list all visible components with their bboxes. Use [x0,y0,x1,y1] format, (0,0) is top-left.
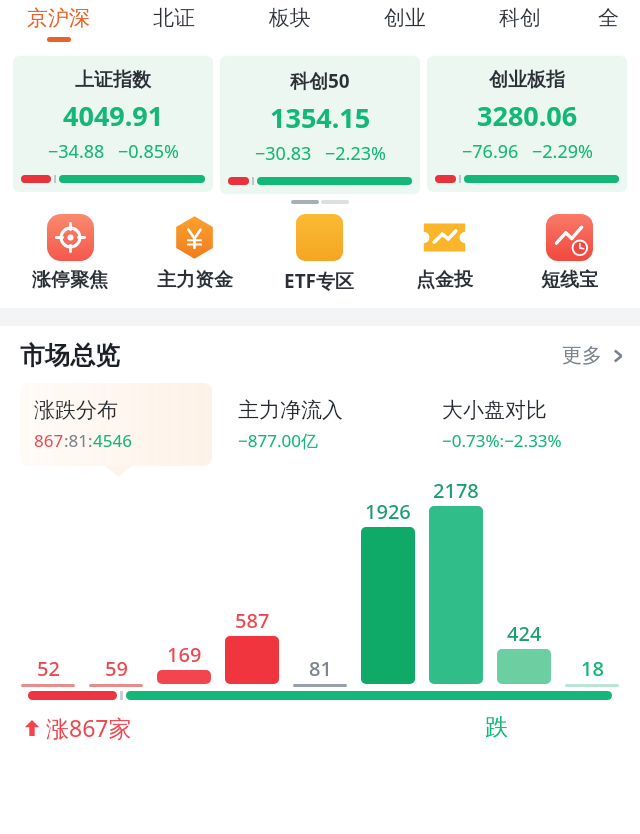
button[interactable]: 主力资金 [132,214,257,292]
staticText: 科创 [499,5,541,31]
button[interactable]: 短线宝 [507,214,632,292]
button[interactable]: 科创50 [220,56,420,194]
staticText: −2.23% [325,141,386,166]
button[interactable]: 板块 [232,0,347,56]
staticText: 4049.91 [63,97,164,134]
staticText: 全 [598,5,619,31]
staticText: 587 [235,607,270,634]
staticText: 52 [37,655,60,682]
staticText: 169 [167,641,202,668]
staticText: 创业板指 [489,68,565,92]
staticText: −30.83 [255,141,312,166]
staticText: 1354.15 [270,99,371,136]
button[interactable]: 点金投 [382,214,507,292]
button[interactable]: 更多 [562,343,626,368]
staticText: 59 [105,655,128,682]
staticText: −76.96 [462,139,519,164]
staticText: 涨867家 [46,712,132,743]
button[interactable]: 北证 [116,0,232,56]
button[interactable]: 全 [577,0,640,56]
staticText: 1926 [365,498,411,525]
button[interactable]: 主力净流入 [224,383,416,466]
staticText: ETF专区 [284,268,355,294]
staticText: 京沪深 [27,5,90,31]
staticText: −34.88 [48,139,105,164]
staticText: 点金投 [416,268,473,292]
staticText: 涨停聚焦 [32,268,108,292]
staticText: :81: [64,429,93,452]
staticText: 81 [309,655,332,682]
staticText: 北证 [153,5,195,31]
button[interactable]: 大小盘对比 [428,383,620,466]
staticText: 市场总览 [20,340,120,371]
staticText: −0.85% [118,139,179,164]
button[interactable]: 涨跌分布 [20,383,212,466]
staticText: 867 [34,429,64,452]
staticText: 创业 [384,5,426,31]
staticText: 短线宝 [541,268,598,292]
button[interactable]: 创业 [347,0,462,56]
staticText: 主力净流入 [238,397,343,423]
button[interactable]: ETF专区 [257,214,382,294]
button[interactable]: 涨停聚焦 [8,214,132,292]
staticText: 主力资金 [157,268,233,292]
staticText: 上证指数 [75,68,151,92]
staticText: 2178 [433,477,479,504]
staticText: 科创50 [290,68,350,94]
staticText: 18 [581,655,604,682]
staticText: 424 [507,620,542,647]
staticText: 涨跌分布 [34,397,118,423]
button[interactable]: 京沪深 [0,0,116,56]
button[interactable]: 科创 [462,0,577,56]
staticText: −2.29% [532,139,593,164]
button[interactable]: 上证指数 [13,56,213,192]
staticText: 3280.06 [477,97,578,134]
staticText: 大小盘对比 [442,397,547,423]
staticText: −877.00亿 [238,429,318,452]
staticText: 更多 [562,343,602,368]
staticText: −0.73%:−2.33% [442,429,562,452]
staticText: 板块 [269,5,311,31]
staticText: 4546 [93,429,132,452]
button[interactable]: 创业板指 [427,56,627,192]
staticText: 跌 [485,713,508,742]
